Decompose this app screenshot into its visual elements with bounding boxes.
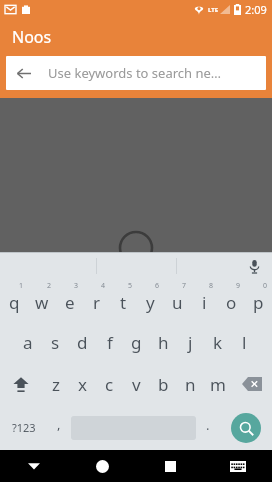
button[interactable]: 5 (110, 279, 137, 321)
staticText: n (185, 373, 196, 396)
staticText: 5 (128, 281, 133, 291)
button[interactable]: s (42, 321, 69, 363)
staticText: 4 (101, 281, 106, 291)
button[interactable]: 7 (164, 279, 191, 321)
staticText: t (120, 291, 127, 314)
button[interactable]: Back (6, 56, 266, 90)
button[interactable]: ?123 (0, 405, 47, 450)
button[interactable]: Switch keyboard (204, 450, 272, 482)
staticText: 6 (155, 281, 160, 291)
staticText: Noos (12, 26, 52, 48)
staticText: x (78, 373, 87, 396)
staticText: o (226, 291, 237, 314)
button[interactable]: . (196, 405, 220, 450)
staticText: w (35, 291, 49, 314)
button[interactable]: 4 (83, 279, 110, 321)
staticText: v (132, 373, 141, 396)
staticText: , (57, 415, 61, 433)
staticText: c (105, 373, 114, 396)
staticText: e (65, 291, 75, 314)
button[interactable]: 3 (56, 279, 83, 321)
staticText: 3 (74, 281, 79, 291)
button[interactable]: b (150, 363, 177, 405)
staticText: l (242, 331, 247, 354)
button[interactable]: n (177, 363, 204, 405)
button[interactable]: 1 (0, 279, 28, 321)
staticText: Use keywords to search ne… (48, 64, 222, 82)
button[interactable]: z (42, 363, 69, 405)
staticText: 1 (19, 281, 24, 291)
button[interactable]: Shift (0, 363, 42, 405)
button[interactable]: m (204, 363, 231, 405)
button[interactable]: 9 (218, 279, 245, 321)
button[interactable]: Backspace (231, 363, 272, 405)
button[interactable]: Hide keyboard (0, 450, 68, 482)
staticText: f (107, 331, 113, 354)
staticText: 9 (236, 281, 241, 291)
button[interactable]: Voice input (244, 256, 264, 276)
staticText: z (52, 373, 60, 396)
button[interactable]: Search (220, 405, 272, 450)
button[interactable]: h (150, 321, 177, 363)
button[interactable]: v (123, 363, 150, 405)
staticText: ?123 (12, 420, 36, 435)
staticText: p (253, 291, 264, 314)
button[interactable]: 0 (245, 279, 272, 321)
staticText: 2:09 (245, 2, 267, 17)
button[interactable]: g (123, 321, 150, 363)
button[interactable]: 2 (28, 279, 56, 321)
staticText: s (51, 331, 60, 354)
button[interactable]: a (14, 321, 42, 363)
staticText: LTE (208, 6, 219, 14)
button[interactable]: 8 (191, 279, 218, 321)
staticText: k (213, 331, 223, 354)
staticText: y (146, 291, 155, 314)
button[interactable]: k (204, 321, 231, 363)
staticText: 0 (263, 281, 268, 291)
staticText: 7 (182, 281, 187, 291)
staticText: j (188, 331, 193, 354)
staticText: 8 (209, 281, 214, 291)
staticText: g (131, 331, 142, 354)
staticText: h (158, 331, 169, 354)
staticText: a (23, 331, 33, 354)
staticText: i (202, 291, 207, 314)
staticText: b (158, 373, 169, 396)
staticText: u (172, 291, 183, 314)
staticText: 2 (47, 281, 52, 291)
button[interactable] (71, 405, 196, 450)
staticText: r (93, 291, 101, 314)
button[interactable]: Recents (136, 450, 204, 482)
button[interactable]: c (96, 363, 123, 405)
staticText: d (77, 331, 88, 354)
button[interactable]: f (96, 321, 123, 363)
staticText: . (206, 416, 210, 434)
button[interactable]: x (69, 363, 96, 405)
staticText: q (9, 291, 20, 314)
staticText: m (210, 373, 226, 396)
button[interactable]: d (69, 321, 96, 363)
button[interactable]: Home (68, 450, 136, 482)
button[interactable]: j (177, 321, 204, 363)
button[interactable]: l (231, 321, 258, 363)
button[interactable]: 6 (137, 279, 164, 321)
button[interactable]: , (47, 405, 71, 450)
button[interactable]: Back (6, 56, 40, 90)
